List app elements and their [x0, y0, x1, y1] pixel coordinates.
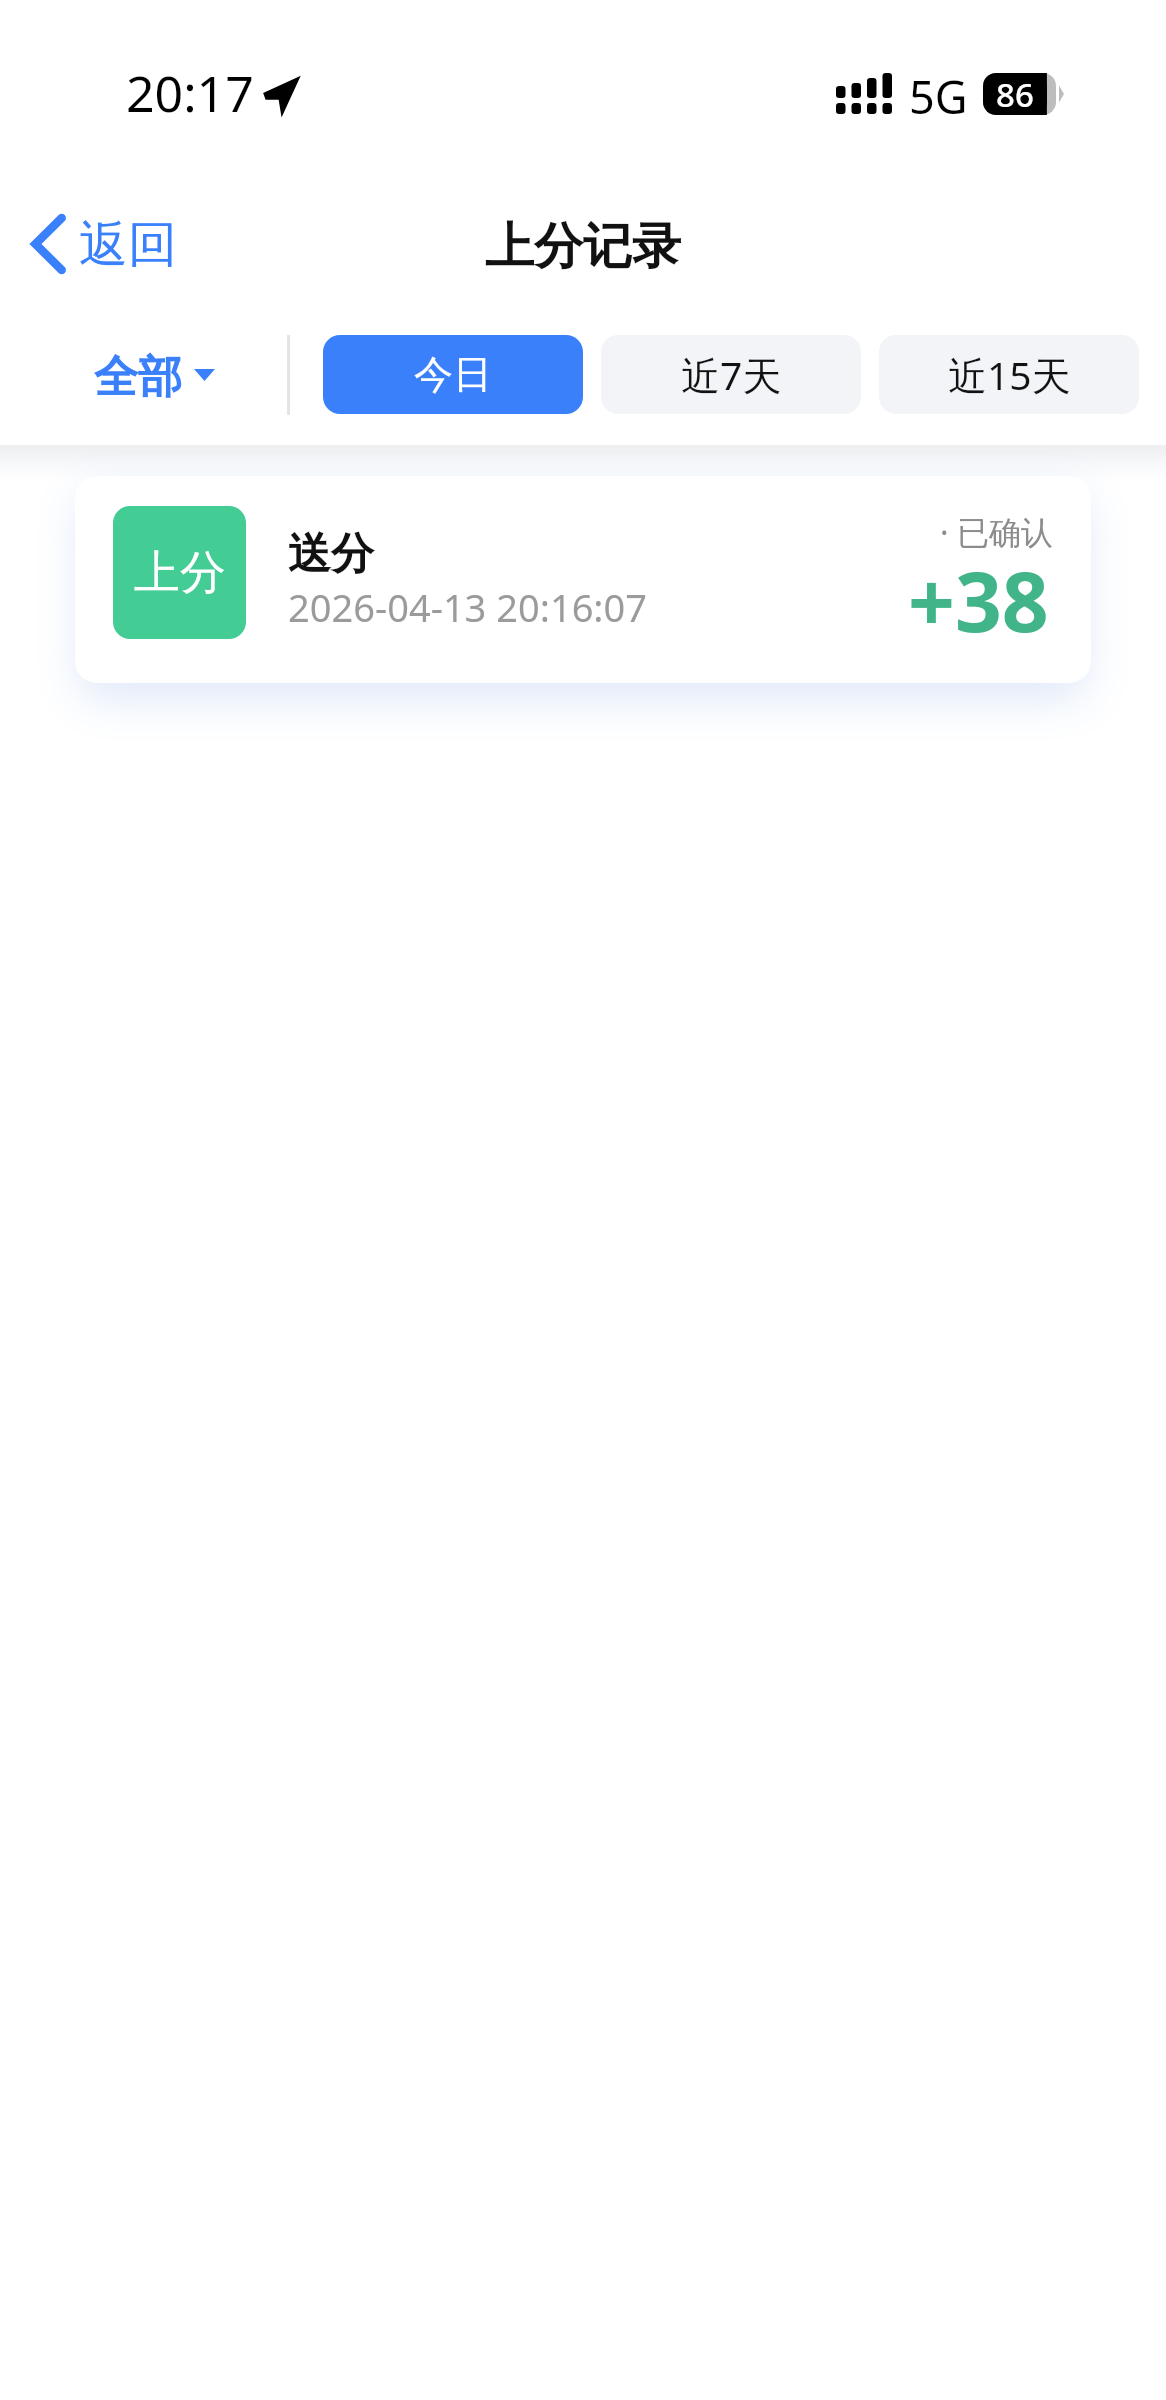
staticText: 近7天	[681, 348, 782, 401]
staticText: 20:17	[126, 59, 254, 127]
button[interactable]: 近7天	[601, 335, 861, 414]
staticText: 2026-04-13 20:16:07	[288, 581, 648, 633]
staticText: 86	[996, 72, 1034, 114]
staticText: 近15天	[948, 348, 1071, 401]
staticText: +38	[908, 544, 1049, 656]
staticText: · 已确认	[940, 510, 1053, 554]
button[interactable]: 返回	[0, 206, 197, 288]
staticText: 返回	[79, 214, 177, 276]
staticText: 今日	[414, 350, 492, 399]
button[interactable]: 近15天	[879, 335, 1139, 414]
staticText: 送分	[288, 527, 374, 581]
staticText: 全部	[94, 350, 182, 405]
button[interactable]: 今日	[323, 335, 583, 414]
button[interactable]: 全部	[64, 334, 245, 421]
staticText: 上分	[134, 544, 226, 602]
staticText: 上分记录	[485, 216, 681, 278]
staticText: 5G	[909, 66, 968, 127]
button[interactable]: 上分	[75, 476, 1091, 683]
